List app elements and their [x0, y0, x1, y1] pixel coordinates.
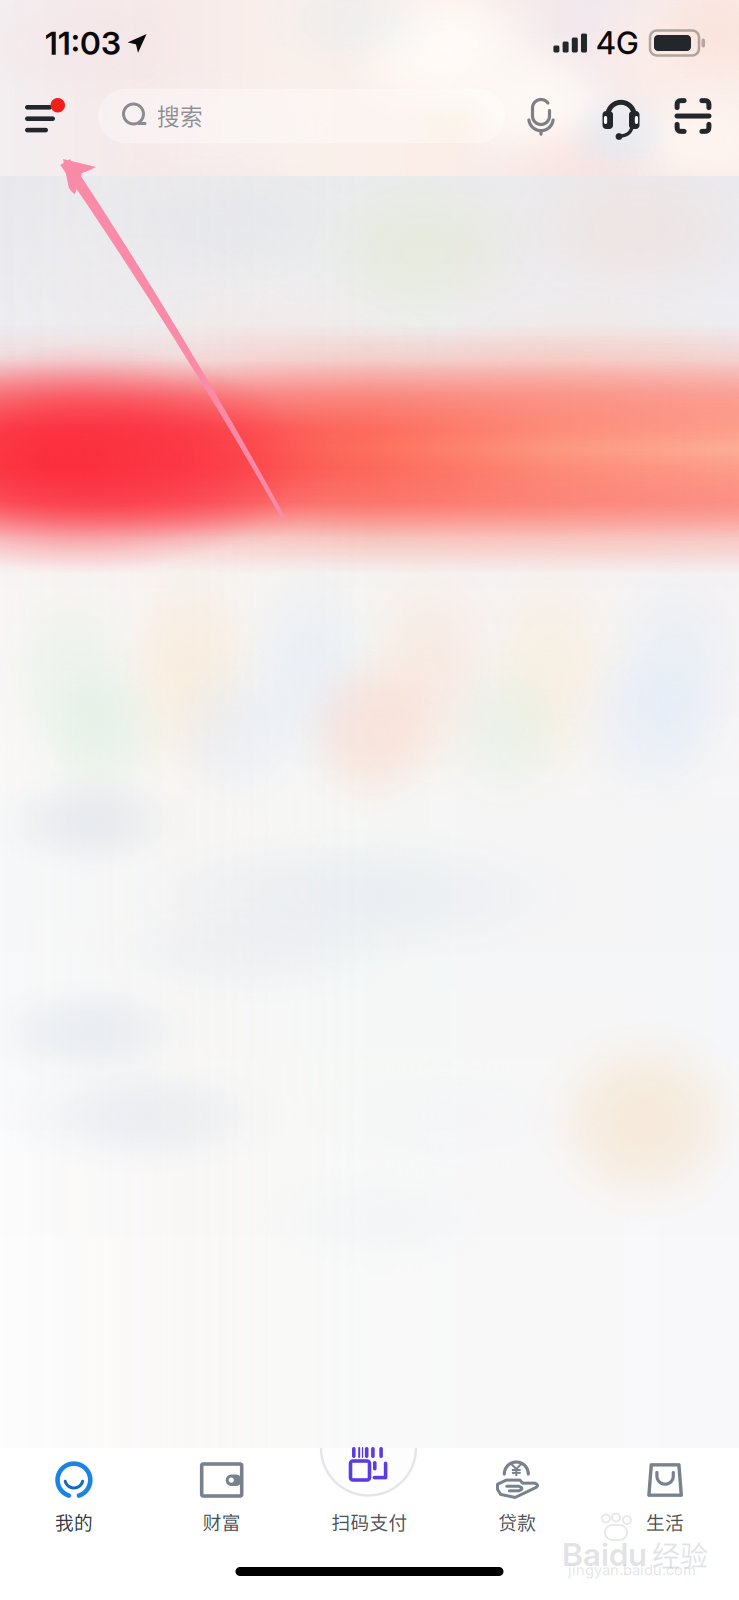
staticText: 11:03: [45, 24, 121, 62]
button[interactable]: Menu: [22, 86, 80, 142]
button[interactable]: Customer service: [596, 90, 646, 142]
staticText: Baidu: [562, 1535, 647, 1574]
staticText: 我的: [55, 1508, 93, 1535]
staticText: 4G: [596, 24, 639, 61]
button[interactable]: 我的: [0, 1448, 148, 1560]
button[interactable]: 贷款: [443, 1448, 591, 1560]
staticText: 贷款: [498, 1508, 536, 1535]
staticText: 财富: [203, 1508, 241, 1535]
button[interactable]: 生活: [591, 1448, 739, 1560]
staticText: 扫码支付: [331, 1508, 407, 1535]
staticText: 经验: [652, 1534, 708, 1574]
button[interactable]: 搜索: [98, 89, 505, 143]
button[interactable]: 扫码支付: [296, 1448, 443, 1560]
button[interactable]: Scan code: [668, 90, 718, 142]
button[interactable]: Voice search: [517, 90, 565, 142]
staticText: jingyan.baidu.com: [568, 1561, 696, 1579]
staticText: 生活: [646, 1508, 684, 1535]
staticText: 搜索: [157, 99, 203, 131]
button[interactable]: 财富: [148, 1448, 296, 1560]
